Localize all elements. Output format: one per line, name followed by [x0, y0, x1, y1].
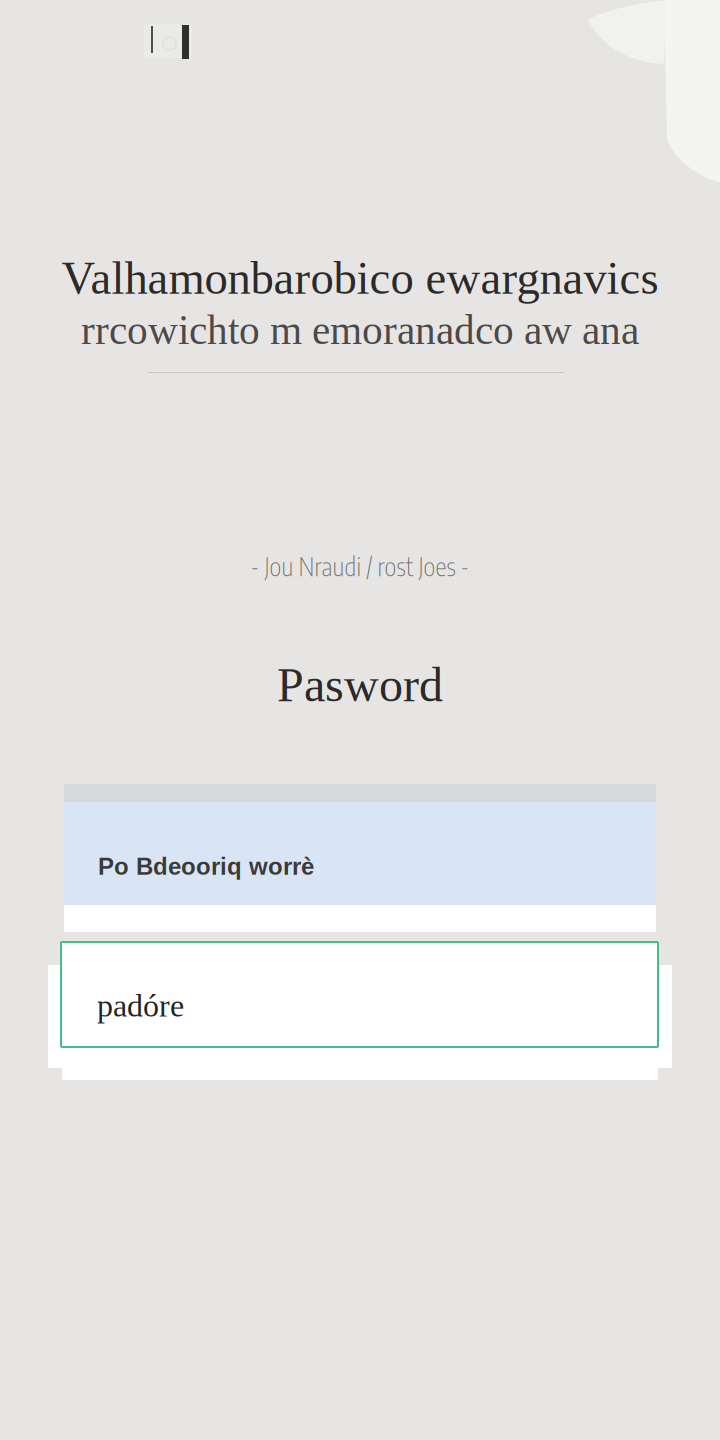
staticText: Pasword	[277, 658, 443, 712]
staticText: padóre	[97, 988, 184, 1023]
button[interactable]: Home	[144, 24, 192, 60]
button[interactable]: Po Bdeooriq worrè	[64, 784, 656, 932]
button[interactable]: padóre	[48, 941, 674, 1085]
staticText: Po Bdeooriq worrè	[98, 853, 314, 880]
staticText: - Jou Nraudi / rost Joes -	[250, 550, 469, 582]
staticText: Valhamonbarobico ewargnavics	[61, 252, 658, 304]
staticText: rrcowichto m emoranadco aw ana	[81, 307, 639, 353]
